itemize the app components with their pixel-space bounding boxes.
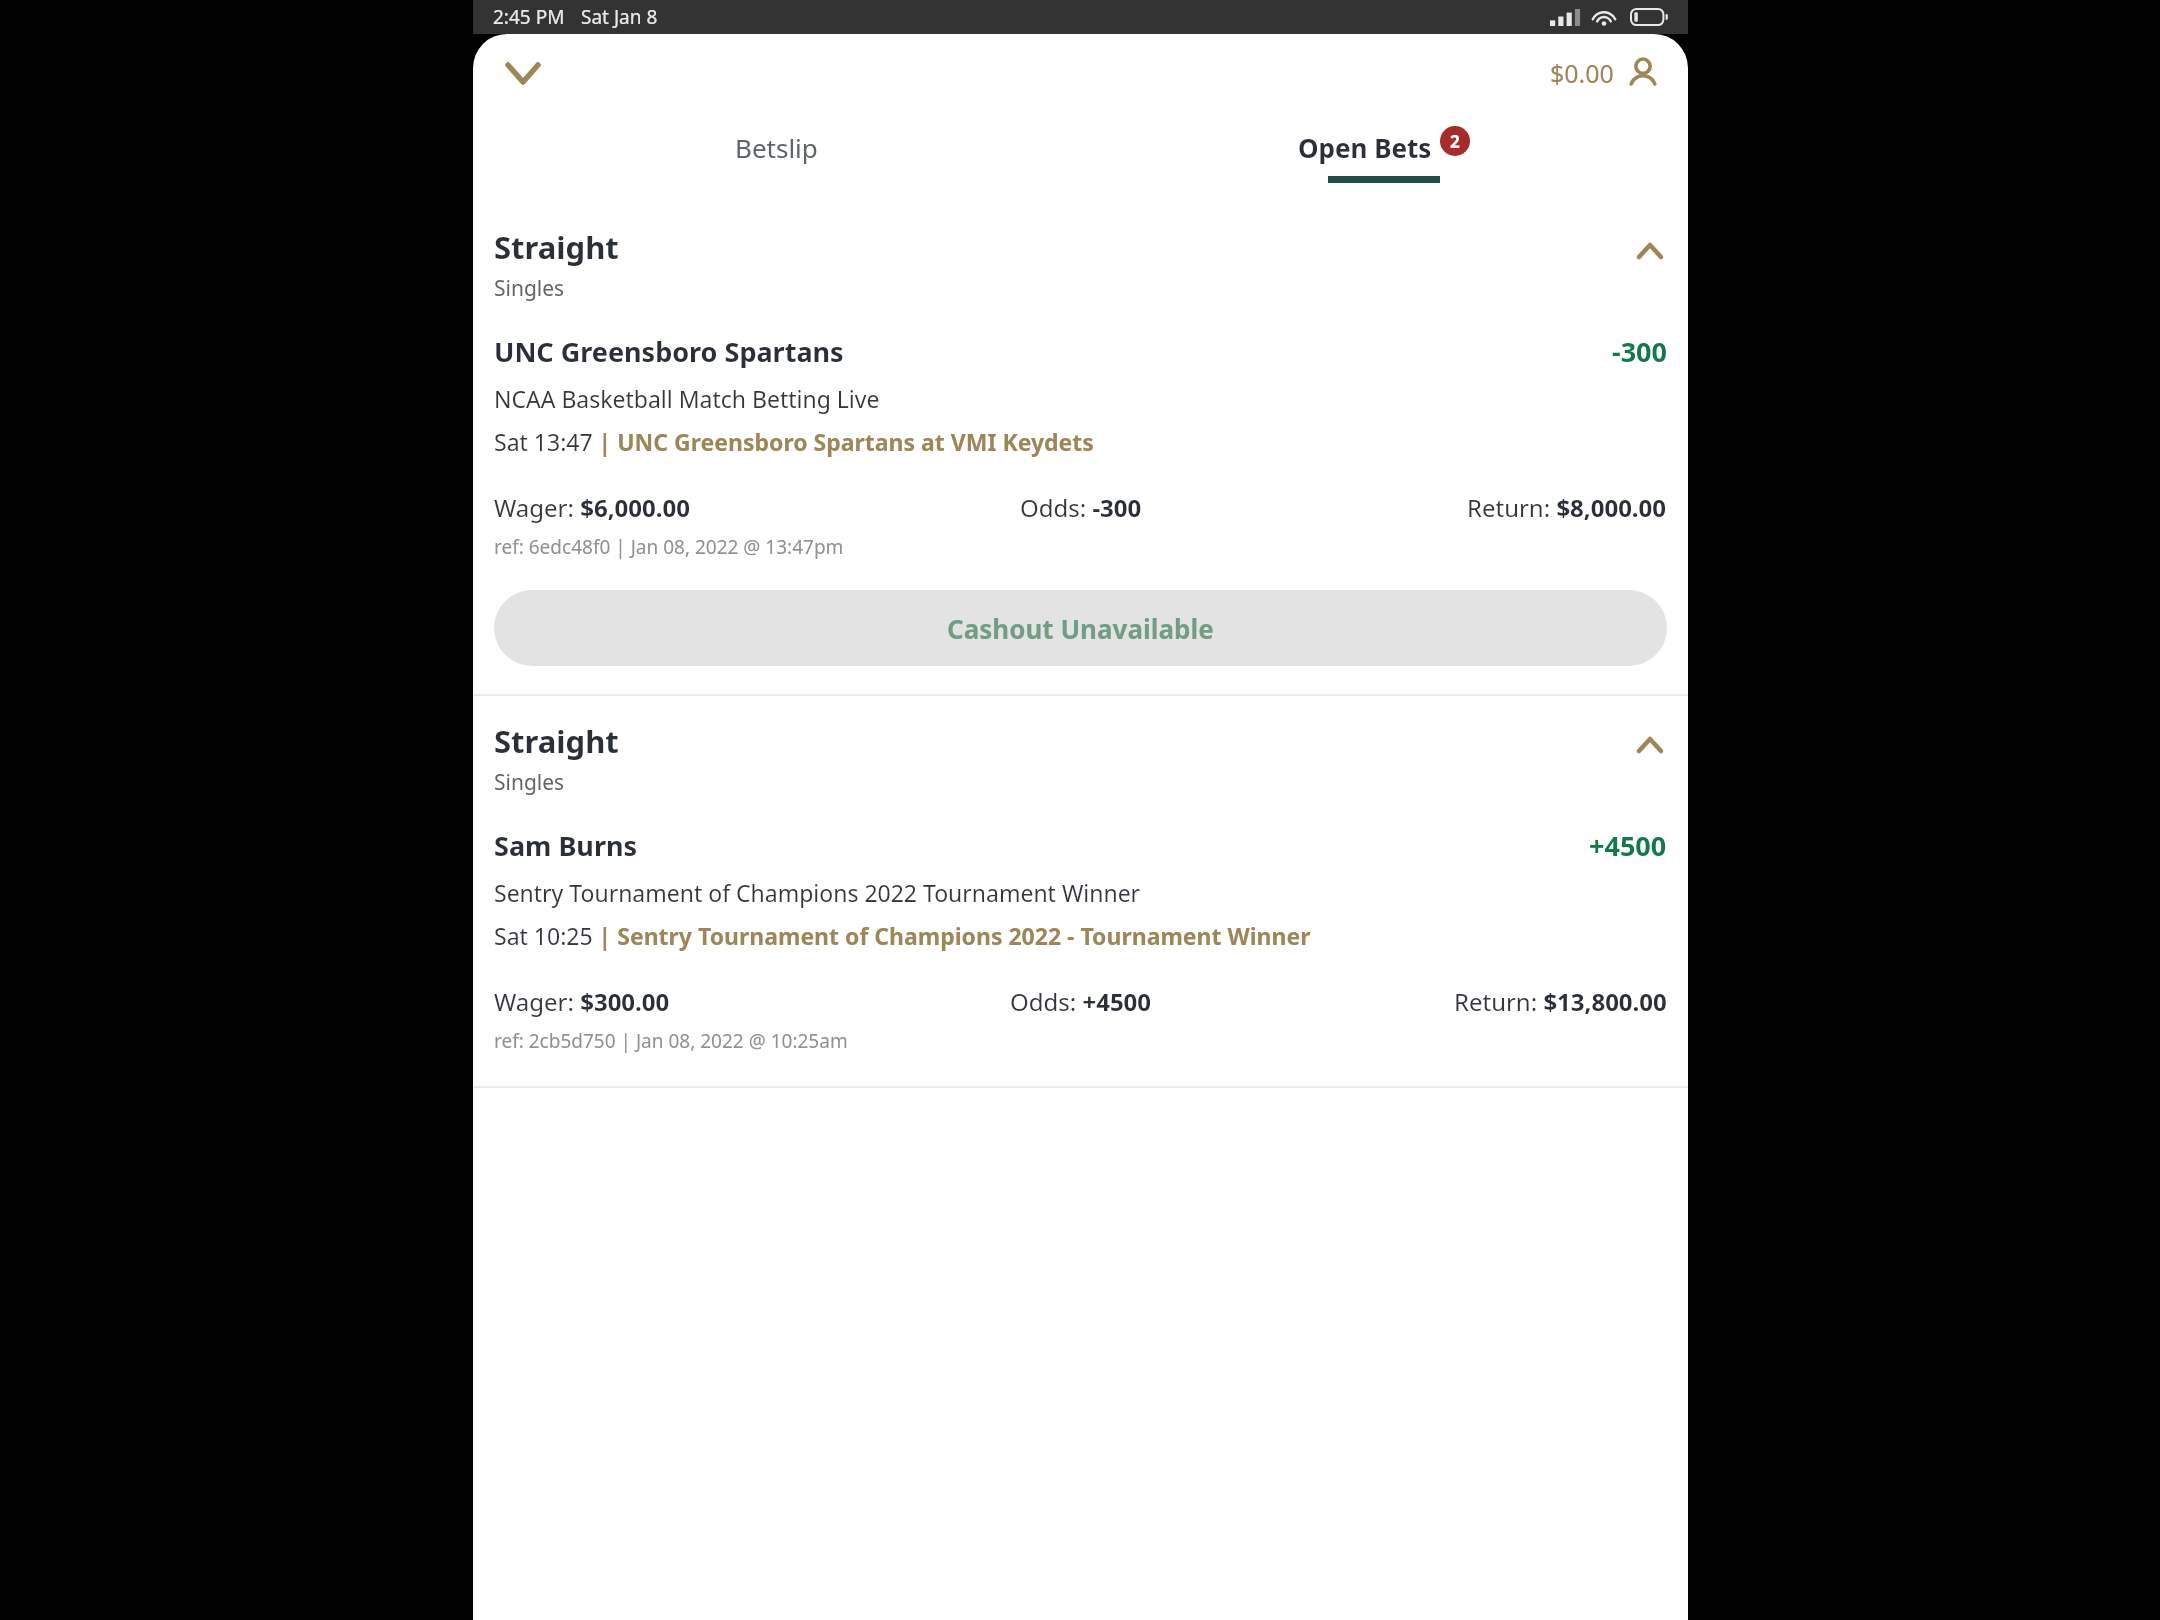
staticText: $0.00 (1550, 56, 1614, 90)
button[interactable]: Straight (473, 696, 1688, 803)
staticText: Sat 10:25 | Sentry Tournament of Champio… (494, 920, 1311, 951)
staticText: Straight (494, 226, 619, 268)
button[interactable]: Sam Burns (473, 803, 1688, 1086)
staticText: Wager: $6,000.00 (494, 491, 690, 524)
staticText: Sentry Tournament of Champions 2022 Tour… (494, 877, 1141, 908)
staticText: Sat 13:47 | UNC Greensboro Spartans at V… (494, 426, 1094, 457)
staticText: NCAA Basketball Match Betting Live (494, 383, 880, 414)
staticText: ref: 2cb5d750 | Jan 08, 2022 @ 10:25am (494, 1028, 848, 1054)
staticText: Straight (494, 720, 619, 762)
staticText: Singles (494, 274, 565, 303)
staticText: Cashout Unavailable (947, 611, 1214, 646)
staticText: Sat Jan 8 (581, 4, 658, 30)
button[interactable]: Betslip (473, 112, 1080, 202)
staticText: Singles (494, 768, 565, 797)
staticText: Wager: $300.00 (494, 985, 670, 1018)
staticText: ref: 6edc48f0 | Jan 08, 2022 @ 13:47pm (494, 534, 844, 560)
button[interactable]: $0.00 (1544, 50, 1666, 96)
button[interactable]: Cashout Unavailable (494, 590, 1667, 666)
staticText: Odds: -300 (1020, 491, 1142, 524)
staticText: Return: $8,000.00 (1467, 491, 1667, 524)
staticText: Odds: +4500 (1010, 985, 1152, 1018)
staticText: 2 (1450, 130, 1460, 153)
button[interactable]: UNC Greensboro Spartans (473, 309, 1688, 590)
staticText: UNC Greensboro Spartans (494, 333, 1612, 370)
button[interactable]: Open Bets (1080, 112, 1688, 202)
staticText: -300 (1612, 333, 1667, 370)
staticText: Sam Burns (494, 827, 1589, 864)
staticText: Return: $13,800.00 (1454, 985, 1667, 1018)
staticText: Open Bets (1298, 130, 1432, 165)
staticText: 2:45 PM (493, 4, 565, 30)
button[interactable]: Collapse (495, 45, 551, 101)
staticText: Betslip (735, 130, 818, 165)
staticText: +4500 (1589, 827, 1667, 864)
button[interactable]: Straight (473, 202, 1688, 309)
